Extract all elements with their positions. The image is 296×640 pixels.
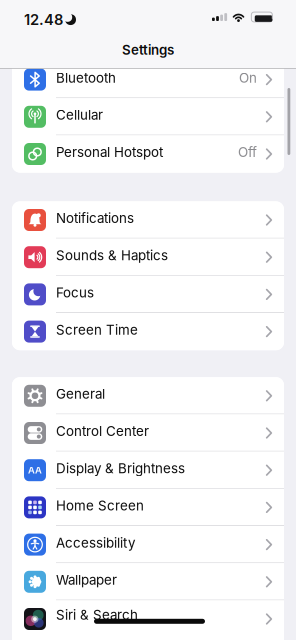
button[interactable]: Sounds & Haptics [12, 239, 284, 276]
button[interactable]: Control Center [12, 414, 284, 452]
staticText: AA [28, 465, 42, 476]
staticText: General [56, 386, 105, 402]
button[interactable]: Personal Hotspot [12, 135, 284, 173]
staticText: Accessibility [56, 535, 135, 551]
button[interactable]: Notifications [12, 201, 284, 239]
staticText: Screen Time [56, 322, 138, 338]
staticText: Notifications [56, 210, 134, 226]
button[interactable]: Home Screen [12, 489, 284, 526]
staticText: Display & Brightness [56, 460, 185, 476]
button[interactable]: Screen Time [12, 313, 284, 350]
button[interactable]: Bluetooth [12, 61, 284, 98]
button[interactable]: General [12, 377, 284, 414]
staticText: Sounds & Haptics [56, 247, 168, 263]
staticText: Home Screen [56, 498, 144, 513]
staticText: Settings [122, 42, 174, 58]
button[interactable]: Siri & Search [12, 600, 284, 638]
staticText: Bluetooth [56, 70, 116, 86]
staticText: Siri & Search [56, 607, 138, 623]
staticText: Cellular [56, 107, 103, 123]
staticText: Focus [56, 285, 94, 300]
staticText: Off [238, 144, 257, 160]
button[interactable]: AA [12, 452, 284, 489]
staticText: 12.48 [24, 11, 63, 28]
staticText: Personal Hotspot [56, 144, 163, 160]
button[interactable]: Focus [12, 276, 284, 313]
staticText: On [239, 70, 257, 86]
button[interactable]: Cellular [12, 98, 284, 135]
staticText: Wallpaper [56, 572, 117, 588]
button[interactable]: Accessibility [12, 526, 284, 563]
staticText: Control Center [56, 423, 149, 439]
button[interactable]: Wallpaper [12, 563, 284, 600]
